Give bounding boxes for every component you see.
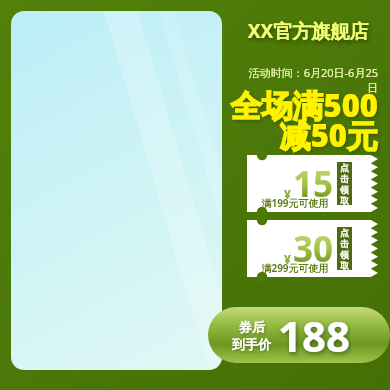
staticText: 活动时间：6月20日-6月25日 <box>238 65 378 95</box>
staticText: ¥ <box>284 186 291 202</box>
staticText: 取 <box>340 195 349 205</box>
button[interactable]: 券后 <box>208 307 390 363</box>
button[interactable]: XX官方旗舰店 <box>236 18 380 44</box>
staticText: 取 <box>340 260 349 270</box>
staticText: 到手价 <box>232 336 271 352</box>
staticText: 满299元可使用 <box>255 261 335 275</box>
staticText: 击 <box>340 238 349 249</box>
staticText: 减50元 <box>228 114 378 156</box>
staticText: ¥ <box>284 251 291 267</box>
staticText: 15 <box>293 160 334 208</box>
staticText: 30 <box>293 225 334 273</box>
staticText: 领 <box>340 184 349 195</box>
staticText: 点 <box>340 227 349 238</box>
staticText: 领 <box>340 249 349 260</box>
staticText: XX官方旗舰店 <box>236 18 380 44</box>
button[interactable]: 领取30元优惠券 <box>247 220 378 277</box>
button[interactable]: 领取15元优惠券 <box>247 155 378 212</box>
staticText: 点 <box>340 162 349 173</box>
staticText: 满199元可使用 <box>255 196 335 210</box>
staticText: 券后 <box>239 319 265 335</box>
staticText: 全场满500 <box>228 84 378 126</box>
staticText: 188 <box>278 307 351 363</box>
staticText: 击 <box>340 173 349 184</box>
button[interactable]: 商品主图 <box>11 11 222 370</box>
